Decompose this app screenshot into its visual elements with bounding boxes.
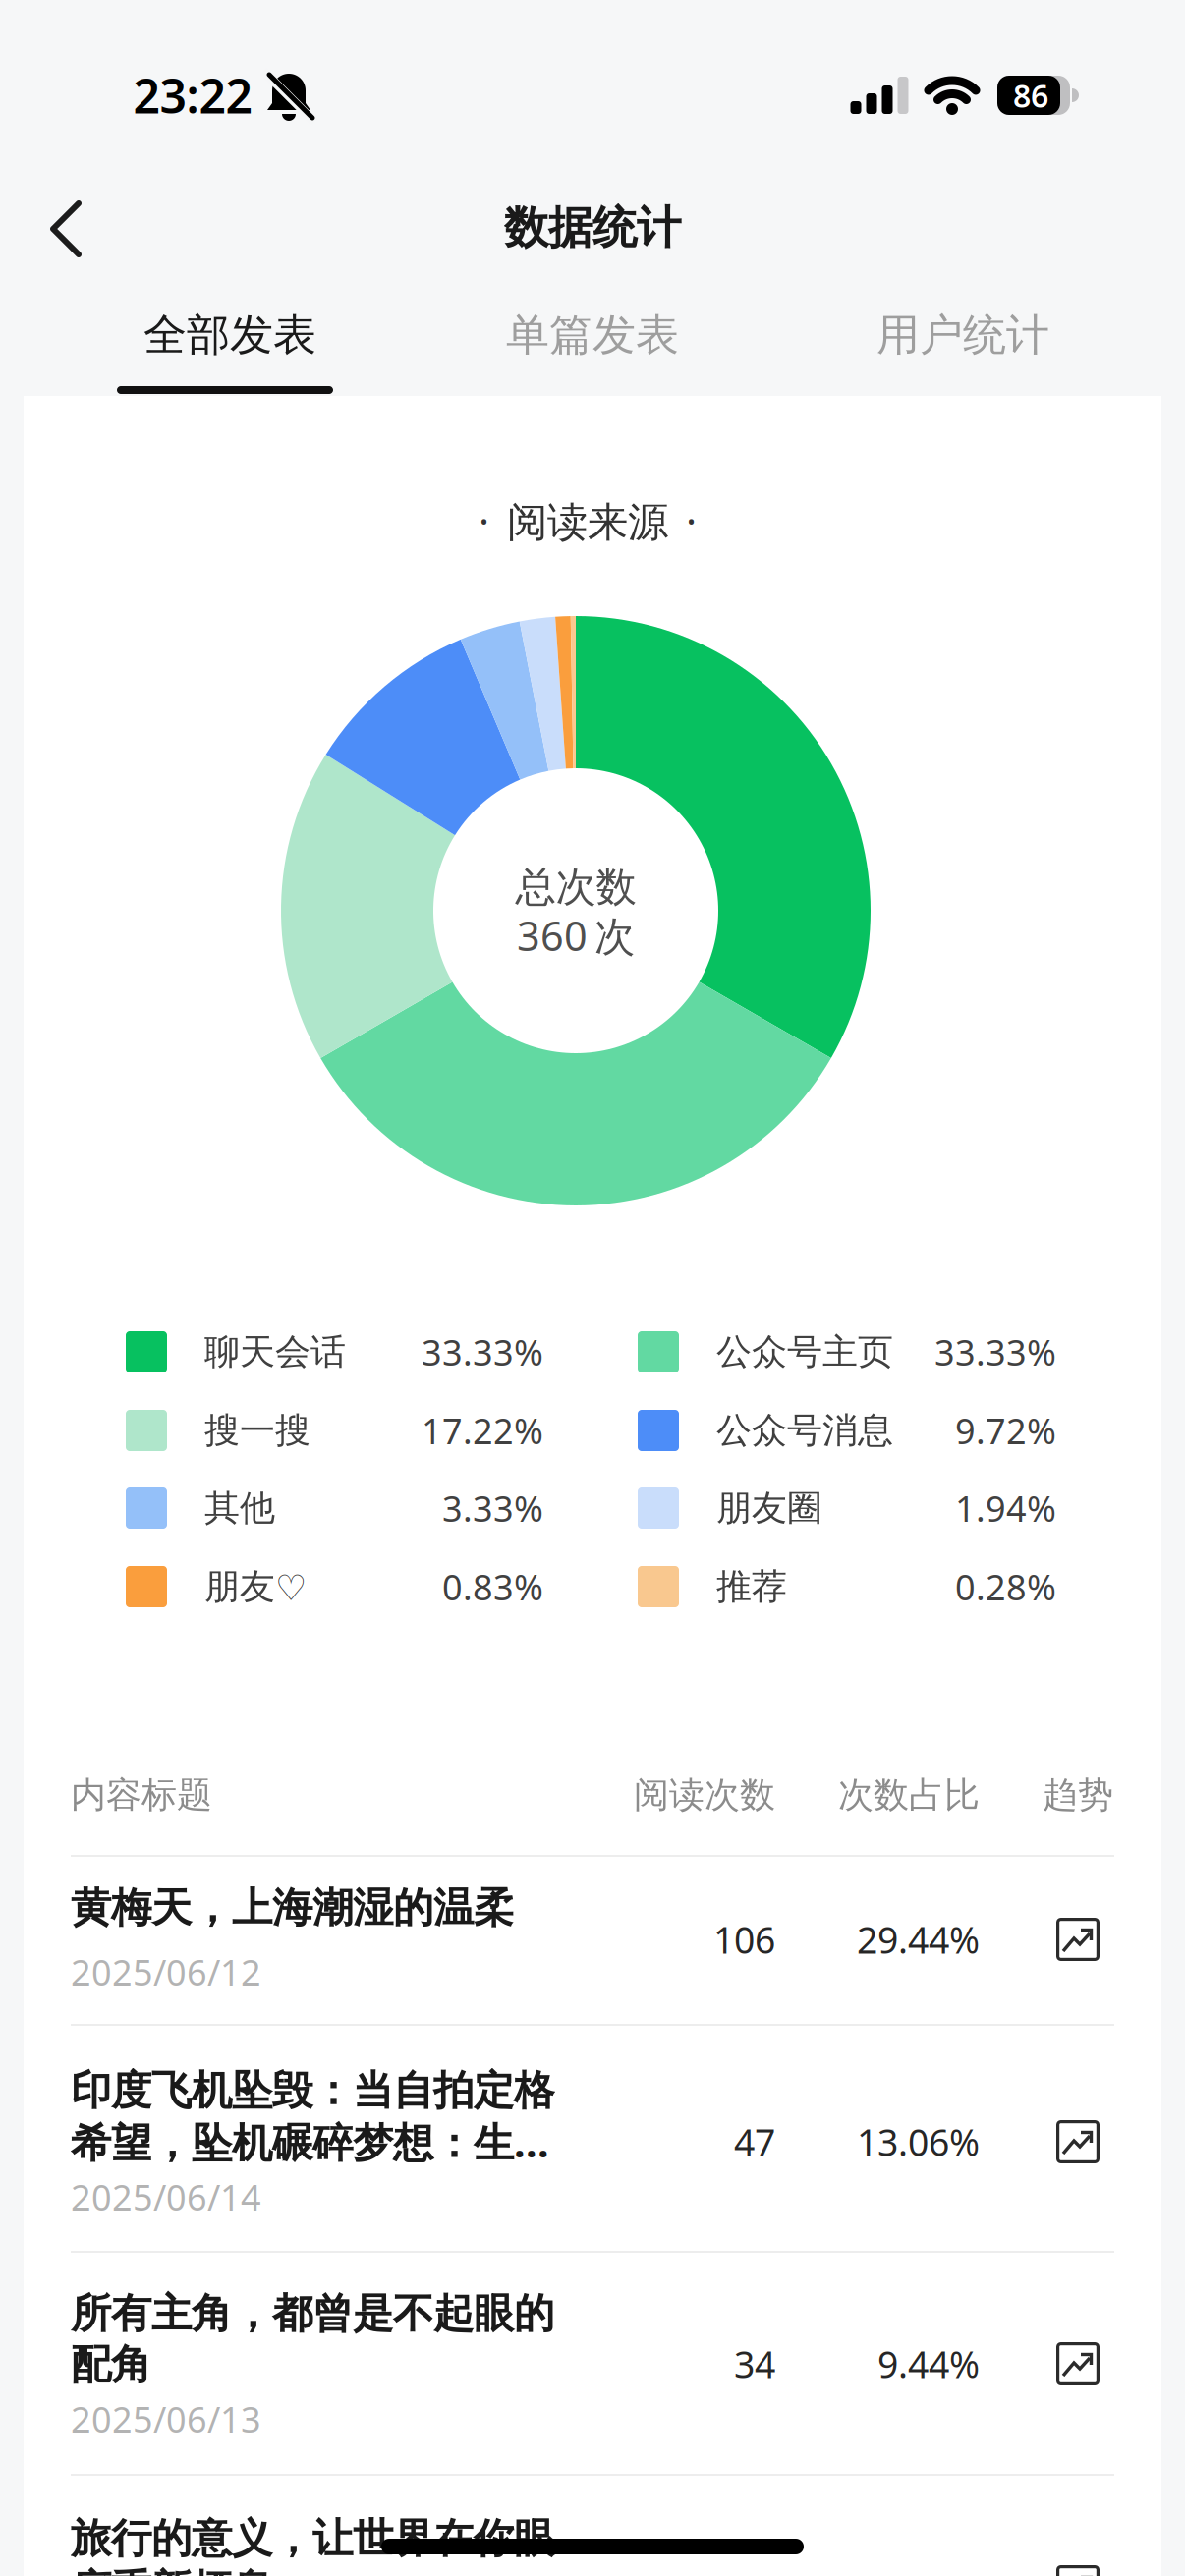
- staticText: 其他: [204, 1486, 275, 1530]
- staticText: 配角: [71, 2340, 151, 2390]
- staticText: 黄梅天，上海潮湿的温柔: [71, 1883, 514, 1933]
- staticText: 29.44%: [857, 1915, 980, 1964]
- staticText: 公众号消息: [716, 1409, 893, 1452]
- staticText: 9.72%: [955, 1407, 1056, 1454]
- staticText: 推荐: [716, 1565, 787, 1608]
- staticText: 希望，坠机碾碎梦想：生...: [71, 2115, 549, 2169]
- staticText: 趋势: [1043, 1773, 1113, 1817]
- staticText: 2025/06/13: [71, 2395, 261, 2442]
- staticText: 0.28%: [955, 1563, 1056, 1610]
- staticText: 13.06%: [857, 2117, 980, 2166]
- button[interactable]: 旅行的意义，让世界在你眼: [0, 0, 1185, 2576]
- staticText: 朋友圈: [716, 1486, 822, 1530]
- staticText: 34: [734, 2339, 775, 2388]
- staticText: 朋友♡: [204, 1565, 307, 1608]
- staticText: 单篇发表: [506, 308, 679, 362]
- staticText: 总次数: [515, 862, 636, 912]
- button[interactable]: 黄梅天，上海潮湿的温柔: [0, 0, 1185, 2576]
- staticText: 数据统计: [504, 201, 681, 255]
- staticText: 2025/06/12: [71, 1948, 261, 1995]
- staticText: 底重新栖息: [71, 2565, 272, 2576]
- staticText: 33.33%: [422, 1328, 543, 1375]
- button[interactable]: 所有主角，都曾是不起眼的: [0, 0, 1185, 2576]
- staticText: 旅行的意义，让世界在你眼: [71, 2514, 554, 2564]
- staticText: 内容标题: [71, 1773, 212, 1817]
- button[interactable]: 全部发表: [0, 0, 1185, 2576]
- staticText: 360 次: [517, 908, 635, 962]
- staticText: 1.94%: [955, 1485, 1056, 1532]
- staticText: 次数占比: [838, 1773, 980, 1817]
- staticText: 印度飞机坠毁：当自拍定格: [71, 2066, 554, 2116]
- staticText: 3.33%: [442, 1485, 543, 1532]
- staticText: 17.22%: [422, 1407, 543, 1454]
- staticText: 公众号主页: [716, 1330, 893, 1374]
- staticText: 33.33%: [934, 1328, 1056, 1375]
- button[interactable]: 单篇发表: [0, 0, 1185, 2576]
- staticText: 全部发表: [143, 308, 316, 362]
- staticText: 47: [734, 2117, 775, 2166]
- staticText: 2025/06/14: [71, 2173, 261, 2220]
- staticText: 所有主角，都曾是不起眼的: [71, 2289, 554, 2339]
- staticText: 0.83%: [442, 1563, 543, 1610]
- button[interactable]: 印度飞机坠毁：当自拍定格: [0, 0, 1185, 2576]
- staticText: 搜一搜: [204, 1409, 310, 1452]
- staticText: 聊天会话: [204, 1330, 346, 1374]
- staticText: 阅读次数: [634, 1773, 775, 1817]
- button[interactable]: 用户统计: [0, 0, 1185, 2576]
- staticText: 用户统计: [876, 308, 1049, 362]
- staticText: · 阅读来源 ·: [479, 494, 697, 548]
- staticText: 23:22: [133, 64, 252, 127]
- staticText: 9.44%: [877, 2339, 980, 2388]
- staticText: 86: [1013, 74, 1048, 116]
- button[interactable]: Back: [0, 0, 1185, 2576]
- staticText: 106: [713, 1915, 775, 1964]
